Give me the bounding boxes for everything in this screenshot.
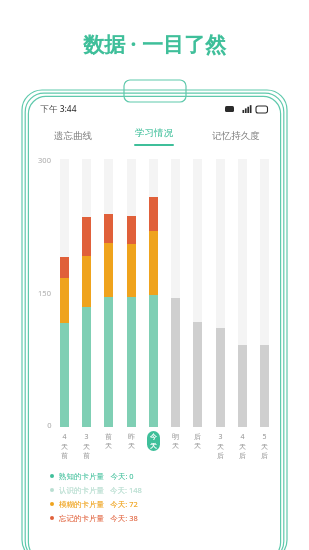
staticText: 认识的卡片量 <box>59 486 104 495</box>
button[interactable] <box>193 159 202 427</box>
staticText: 后 <box>194 432 201 441</box>
staticText: 模糊的卡片量 <box>59 500 104 509</box>
staticText: 今天: 0 <box>110 471 134 481</box>
button[interactable] <box>260 159 269 427</box>
button[interactable]: 熟知的卡片量 <box>50 469 277 483</box>
staticText: 天 <box>83 442 90 451</box>
staticText: 5 <box>262 432 267 442</box>
staticText: 300 <box>38 155 51 165</box>
button[interactable]: 4 <box>236 431 249 461</box>
button[interactable]: 学习情况 <box>113 119 195 153</box>
staticText: 后 <box>217 451 224 460</box>
button[interactable]: 3 <box>80 431 93 461</box>
staticText: 下午 3:44 <box>40 103 77 115</box>
button[interactable] <box>60 159 69 427</box>
staticText: 3 <box>84 432 89 442</box>
staticText: 明 <box>172 432 179 441</box>
button[interactable]: 5 <box>258 431 271 461</box>
staticText: 4 <box>62 432 67 442</box>
staticText: 3 <box>218 432 223 442</box>
staticText: 天 <box>150 441 157 450</box>
button[interactable]: 遗忘曲线 <box>32 119 113 153</box>
button[interactable] <box>82 159 91 427</box>
button[interactable]: 认识的卡片量 <box>50 483 277 497</box>
staticText: 150 <box>38 288 51 298</box>
staticText: 天 <box>105 441 112 450</box>
button[interactable]: 记忆持久度 <box>195 119 277 153</box>
staticText: 天 <box>128 441 135 450</box>
staticText: 天 <box>261 442 268 451</box>
staticText: 天 <box>61 442 68 451</box>
staticText: 前 <box>61 451 68 460</box>
button[interactable]: 前 <box>102 431 115 451</box>
staticText: 天 <box>217 442 224 451</box>
staticText: 前 <box>83 451 90 460</box>
staticText: 遗忘曲线 <box>54 130 92 142</box>
button[interactable]: 今 <box>147 431 160 451</box>
staticText: 天 <box>239 442 246 451</box>
staticText: 0 <box>47 420 52 430</box>
staticText: 今天: 148 <box>110 485 142 495</box>
staticText: 熟知的卡片量 <box>59 472 104 481</box>
staticText: 忘记的卡片量 <box>59 514 104 523</box>
button[interactable] <box>216 159 225 427</box>
button[interactable] <box>104 159 113 427</box>
staticText: 今 <box>150 432 157 441</box>
staticText: 天 <box>172 441 179 450</box>
button[interactable] <box>149 159 158 427</box>
staticText: 今天: 72 <box>110 499 138 509</box>
staticText: 4 <box>240 432 245 442</box>
staticText: 前 <box>105 432 112 441</box>
staticText: 昨 <box>128 432 135 441</box>
button[interactable] <box>238 159 247 427</box>
staticText: 今天: 38 <box>110 513 138 523</box>
button[interactable] <box>127 159 136 427</box>
button[interactable]: 后 <box>191 431 204 451</box>
staticText: 后 <box>261 451 268 460</box>
staticText: 天 <box>194 441 201 450</box>
staticText: 记忆持久度 <box>212 130 260 142</box>
staticText: 后 <box>239 451 246 460</box>
button[interactable]: 忘记的卡片量 <box>50 511 277 525</box>
button[interactable]: 模糊的卡片量 <box>50 497 277 511</box>
button[interactable] <box>171 159 180 427</box>
button[interactable]: 明 <box>169 431 182 451</box>
staticText: 数据 · 一目了然 <box>83 30 226 59</box>
staticText: 学习情况 <box>135 127 173 139</box>
button[interactable]: 3 <box>214 431 227 461</box>
button[interactable]: 昨 <box>125 431 138 451</box>
button[interactable]: 4 <box>58 431 71 461</box>
